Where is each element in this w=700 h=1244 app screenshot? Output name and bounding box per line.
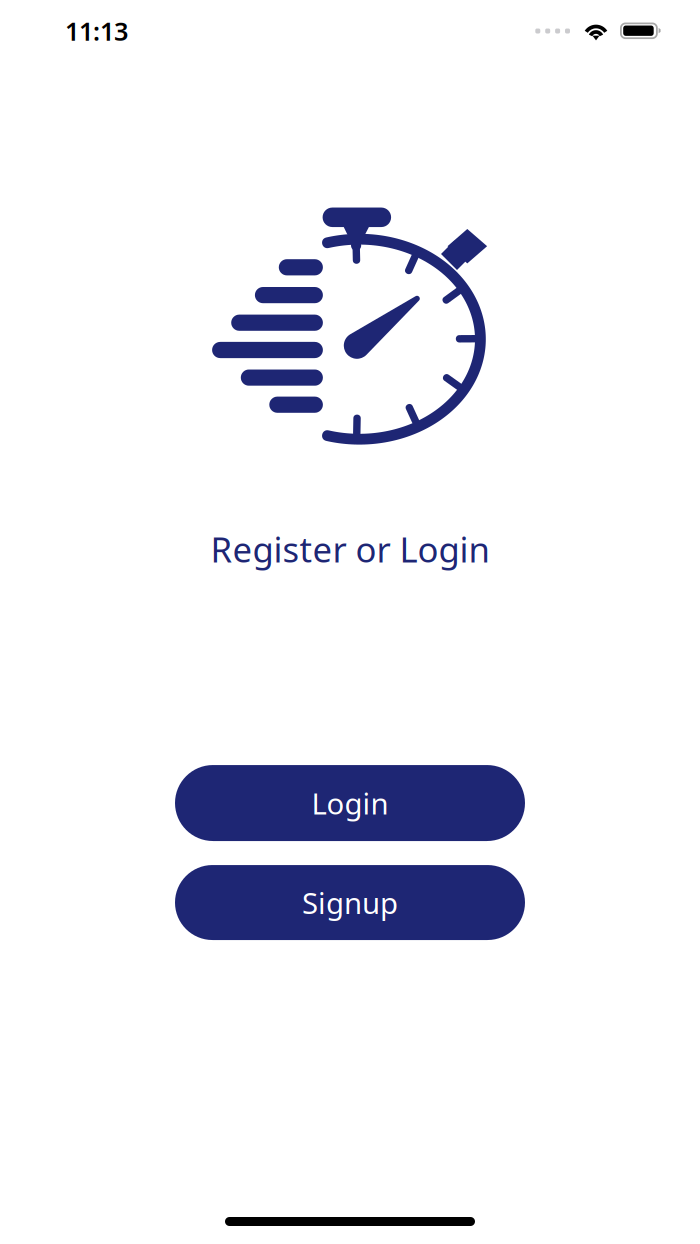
staticText: Signup <box>302 883 398 922</box>
button[interactable]: Login <box>175 765 525 841</box>
staticText: Login <box>311 784 388 823</box>
button[interactable]: Signup <box>175 865 525 940</box>
staticText: 11:13 <box>65 14 128 48</box>
staticText: Register or Login <box>210 526 489 572</box>
